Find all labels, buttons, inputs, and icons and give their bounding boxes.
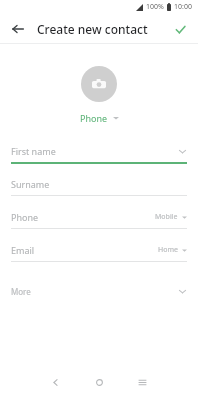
staticText: Surname <box>11 178 50 190</box>
button[interactable]: Add contact photo <box>81 66 117 102</box>
button[interactable]: Home <box>89 372 109 392</box>
button[interactable]: Back <box>45 372 65 392</box>
staticText: Home <box>158 245 178 255</box>
button[interactable]: Phone <box>76 110 123 126</box>
button[interactable]: First name <box>0 140 198 164</box>
staticText: Email <box>11 244 35 256</box>
button[interactable]: Save <box>169 18 191 40</box>
staticText: Create new contact <box>37 21 148 37</box>
button[interactable]: More <box>0 278 198 304</box>
button[interactable]: Recent apps <box>132 372 152 392</box>
staticText: 100% <box>146 2 164 12</box>
staticText: Phone <box>11 211 39 223</box>
staticText: First name <box>11 145 56 157</box>
staticText: Phone <box>80 112 108 124</box>
staticText: More <box>11 286 31 297</box>
button[interactable]: Phone <box>0 206 198 229</box>
staticText: 10:00 <box>174 2 192 12</box>
button[interactable]: Back <box>6 17 30 41</box>
staticText: Mobile <box>155 212 178 222</box>
button[interactable]: Email <box>0 239 198 262</box>
button[interactable]: Surname <box>0 173 198 196</box>
